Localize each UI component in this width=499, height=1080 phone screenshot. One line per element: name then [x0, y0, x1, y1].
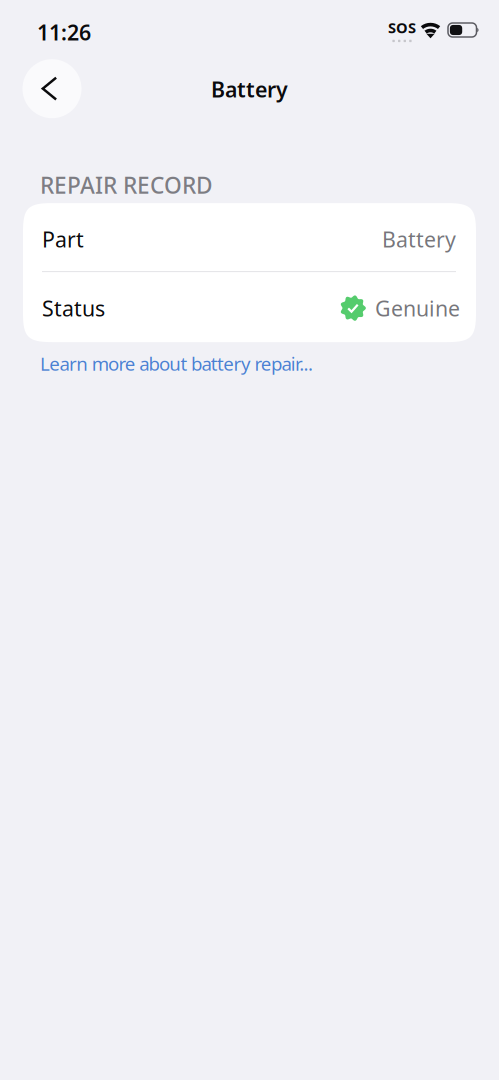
- staticText: 11:26: [37, 18, 91, 46]
- staticText: SOS: [388, 18, 416, 37]
- staticText: Genuine: [375, 294, 460, 322]
- staticText: Battery: [211, 75, 288, 103]
- button[interactable]: Back: [22, 59, 81, 118]
- staticText: REPAIR RECORD: [40, 170, 213, 200]
- staticText: Battery: [382, 225, 456, 253]
- staticText: Status: [42, 294, 105, 322]
- button[interactable]: Learn more about battery repair...: [40, 351, 313, 376]
- staticText: Part: [42, 225, 84, 253]
- staticText: Learn more about battery repair...: [40, 351, 313, 376]
